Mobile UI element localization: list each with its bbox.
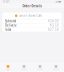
staticText: $3.50 (50, 24, 59, 27)
button[interactable]: Browse (32, 63, 48, 70)
button[interactable]: Delivery (2, 23, 61, 27)
staticText: Order Details (22, 4, 41, 8)
button[interactable]: Account (48, 63, 64, 70)
staticText: $24.00 (48, 19, 59, 23)
staticText: Home (6, 68, 10, 70)
staticText: Orders (21, 68, 27, 70)
button[interactable]: Subtotal (2, 19, 61, 23)
button[interactable]: Home (0, 63, 16, 70)
button[interactable]: Total (2, 28, 61, 32)
staticText: Green Bowl Cafe (19, 14, 43, 17)
staticText: $27.50 (48, 28, 59, 31)
staticText: Subtotal (5, 19, 16, 23)
button[interactable]: Orders (16, 63, 32, 70)
button[interactable]: Green Bowl Cafe (2, 12, 61, 19)
staticText: Delivery (5, 24, 16, 27)
staticText: Account (53, 68, 59, 70)
staticText: Browse (37, 68, 43, 70)
staticText: 9:41 (3, 0, 10, 3)
staticText: Total (5, 28, 11, 31)
